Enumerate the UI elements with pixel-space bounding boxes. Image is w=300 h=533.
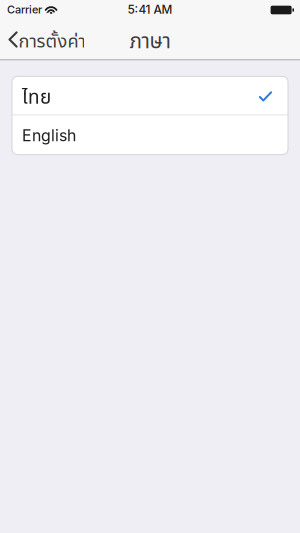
- button[interactable]: ไทย: [12, 76, 288, 114]
- button[interactable]: English: [12, 116, 288, 155]
- staticText: English: [22, 126, 76, 145]
- staticText: ภาษา: [129, 26, 170, 58]
- staticText: การตั้งค่า: [18, 28, 85, 56]
- button[interactable]: การตั้งค่า: [0, 19, 91, 59]
- staticText: 5:41 AM: [127, 2, 172, 17]
- staticText: ไทย: [22, 84, 51, 112]
- staticText: Carrier: [7, 3, 42, 16]
